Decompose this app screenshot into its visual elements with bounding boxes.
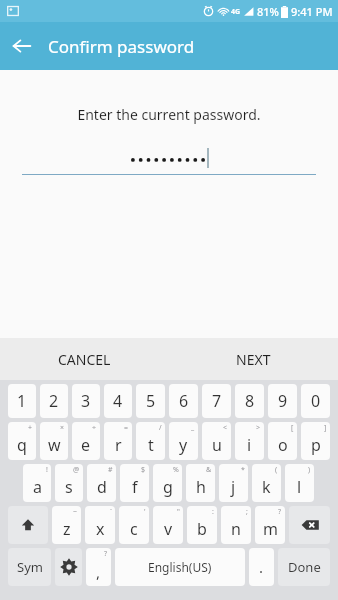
button[interactable]: > [235,422,264,460]
staticText: x [96,518,105,540]
staticText: ÷ [92,423,97,433]
staticText: d [97,476,107,498]
button[interactable]: Backspace [289,506,330,544]
staticText: Done [288,558,321,576]
staticText: v [164,518,173,540]
button[interactable]: / [136,422,165,460]
button[interactable]: 0 [301,384,330,418]
staticText: o [278,434,288,456]
staticText: ' [144,507,146,517]
staticText: g [163,476,173,498]
button[interactable]: × [40,422,68,460]
staticText: a [33,476,42,498]
button[interactable]: ' [119,506,149,544]
button[interactable]: 4 [104,384,132,418]
staticText: = [124,423,129,433]
staticText: _ [191,423,195,433]
staticText: e [81,434,91,456]
button[interactable]: . [249,548,274,586]
button[interactable]: ÷ [72,422,100,460]
button[interactable]: 1 [8,384,36,418]
staticText: % [173,465,179,475]
staticText: : [212,507,214,517]
staticText: 8 [245,390,255,412]
staticText: Confirm password [48,35,195,58]
staticText: w [48,434,61,456]
staticText: < [223,423,228,433]
button[interactable]: NEXT [169,338,338,380]
button[interactable]: Keyboard settings [55,548,82,586]
staticText: ) [308,465,311,475]
button[interactable]: ) [285,464,314,502]
staticText: Enter the current password. [77,105,261,124]
button[interactable]: @ [55,464,83,502]
staticText: 3 [81,390,91,412]
staticText: 9:41 PM [291,4,333,19]
button[interactable]: ~ [52,506,81,544]
button[interactable]: ! [23,464,51,502]
button[interactable]: CANCEL [0,338,169,380]
button[interactable]: < [202,422,231,460]
button[interactable]: $ [120,464,149,502]
button[interactable]: 3 [72,384,100,418]
staticText: ~ [73,507,78,517]
staticText: # [108,465,113,475]
button[interactable]: Back [0,24,44,68]
button[interactable]: ( [252,464,281,502]
staticText: h [196,476,206,498]
staticText: 0 [311,390,321,412]
button[interactable]: _ [169,422,198,460]
staticText: ? [104,549,108,559]
button[interactable]: & [186,464,215,502]
button[interactable]: * [219,464,248,502]
button[interactable]: ] [301,422,330,460]
staticText: 2 [49,390,59,412]
staticText: 4 [113,390,123,412]
staticText: 9 [278,390,288,412]
button[interactable]: Done [278,548,330,586]
button[interactable]: = [104,422,132,460]
button[interactable]: % [153,464,182,502]
button[interactable]: 6 [169,384,198,418]
button[interactable]: 7 [202,384,231,418]
button[interactable]: English(US) [115,548,245,586]
staticText: × [60,423,65,433]
button[interactable]: ? [255,506,285,544]
button[interactable]: 2 [40,384,68,418]
staticText: $ [141,465,146,475]
staticText: k [262,476,271,498]
staticText: NEXT [236,350,271,369]
button[interactable]: Sym [8,548,51,586]
staticText: q [17,434,27,456]
button[interactable]: # [87,464,116,502]
staticText: j [231,476,236,498]
button[interactable]: " [153,506,183,544]
staticText: c [130,518,138,540]
staticText: t [148,434,154,456]
button[interactable]: [ [268,422,297,460]
staticText: i [247,434,252,456]
staticText: / [159,423,162,433]
button[interactable]: ? [86,548,111,586]
staticText: 4G [231,7,241,17]
staticText: ! [46,465,48,475]
button[interactable]: ; [221,506,251,544]
button[interactable]: ` [85,506,115,544]
button[interactable]: Shift [8,506,48,544]
button[interactable]: + [8,422,36,460]
staticText: 7 [212,390,222,412]
staticText: * [241,465,245,475]
button[interactable]: 8 [235,384,264,418]
staticText: p [311,434,321,456]
staticText: @ [73,465,80,475]
staticText: ] [324,423,327,433]
staticText: f [132,476,138,498]
staticText: m [263,518,278,540]
staticText: y [179,434,188,456]
button[interactable]: 9 [268,384,297,418]
button[interactable]: : [187,506,217,544]
button[interactable]: 5 [136,384,165,418]
staticText: " [177,507,180,517]
staticText: ? [278,507,282,517]
staticText: s [65,476,73,498]
